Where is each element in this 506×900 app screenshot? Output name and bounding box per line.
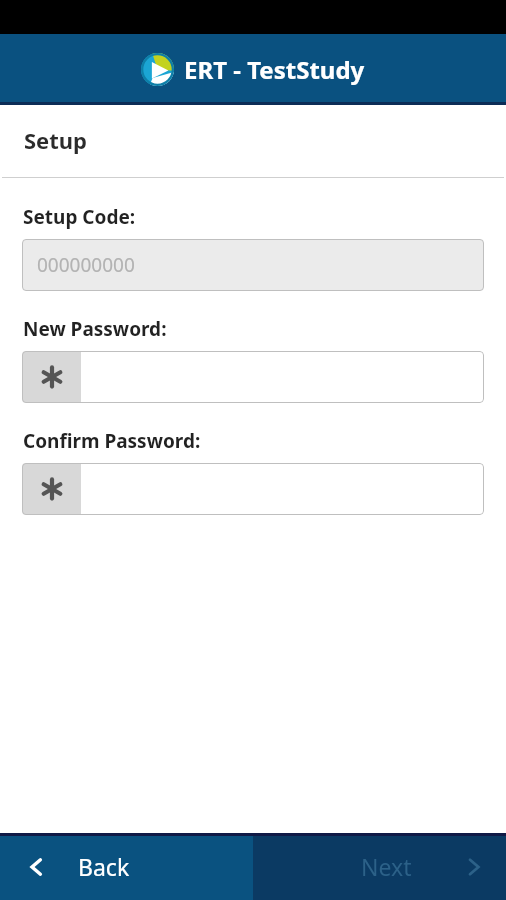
button[interactable]: New password bbox=[22, 351, 484, 403]
button[interactable]: Next bbox=[253, 833, 506, 900]
button[interactable]: Back bbox=[0, 833, 253, 900]
staticText: Setup Code: bbox=[23, 204, 136, 230]
staticText: 000000000 bbox=[37, 252, 135, 278]
staticText: Next bbox=[361, 851, 412, 882]
staticText: Setup bbox=[24, 125, 88, 155]
button[interactable]: Confirm password bbox=[22, 463, 484, 515]
staticText: ERT - TestStudy bbox=[184, 53, 365, 86]
staticText: Back bbox=[78, 851, 130, 882]
staticText: Confirm Password: bbox=[23, 428, 201, 454]
staticText: New Password: bbox=[23, 316, 167, 342]
button[interactable]: 000000000 bbox=[22, 239, 484, 291]
